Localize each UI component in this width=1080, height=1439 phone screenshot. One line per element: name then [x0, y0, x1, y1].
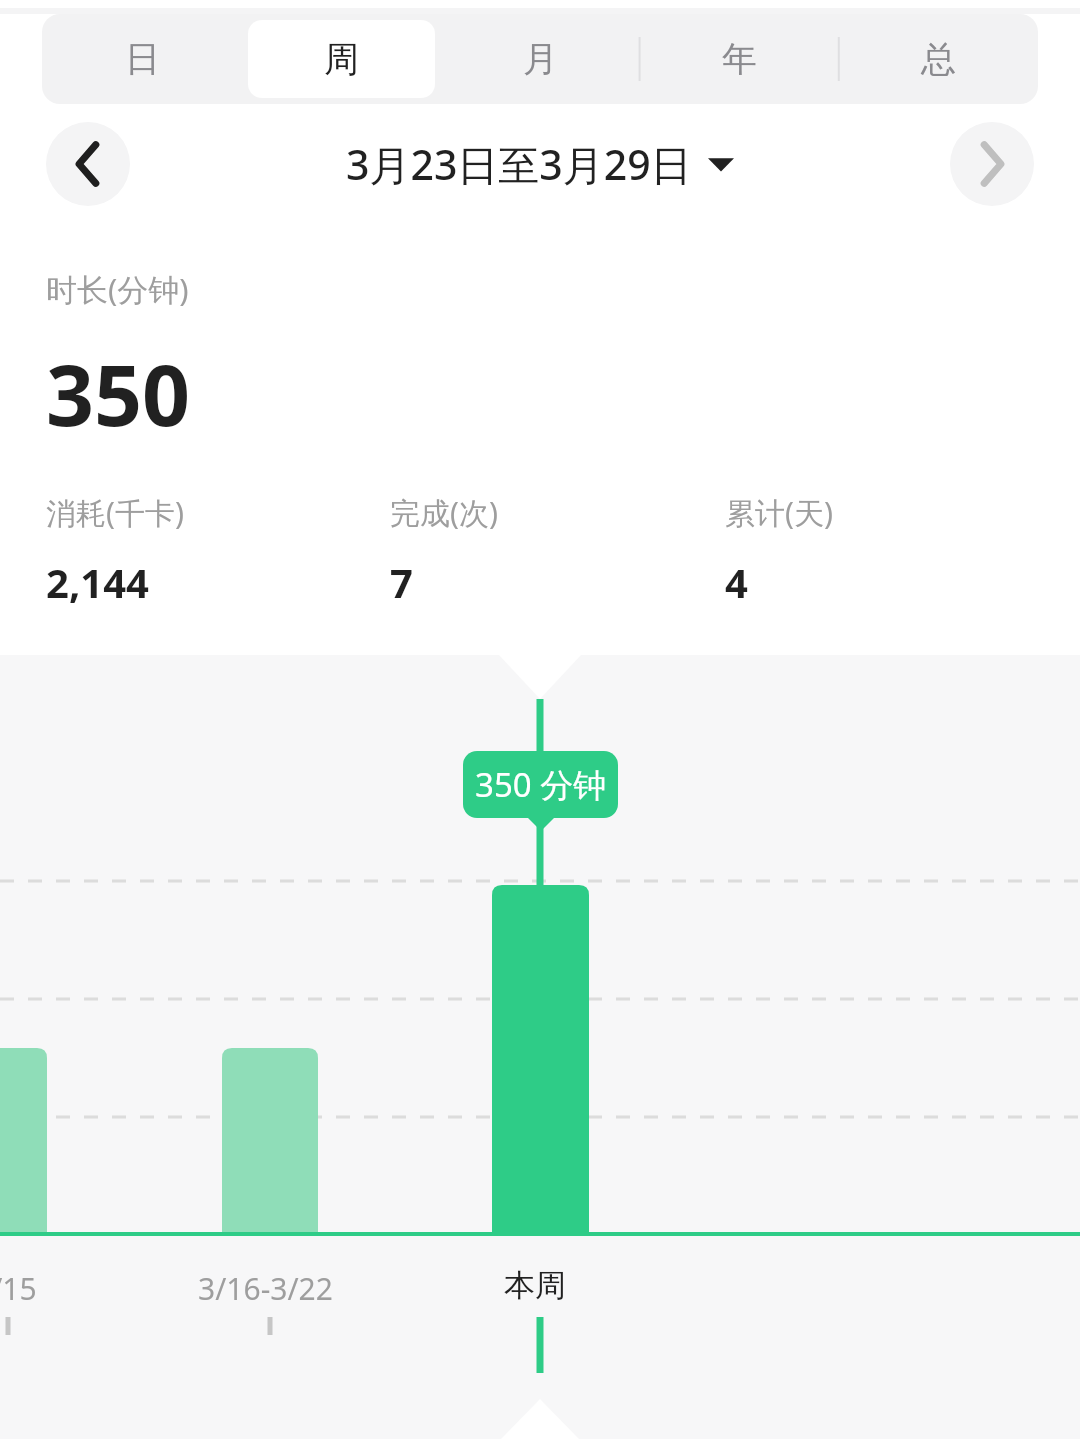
staticText: 累计(天): [725, 492, 833, 533]
button[interactable]: 350 分钟: [463, 751, 618, 818]
staticText: 350: [46, 336, 191, 450]
staticText: 完成(次): [390, 492, 498, 533]
button[interactable]: 月: [447, 20, 634, 98]
staticText: 年: [722, 37, 757, 81]
staticText: 4: [725, 555, 748, 609]
button[interactable]: 周: [248, 20, 435, 98]
staticText: 本周: [504, 1266, 566, 1305]
staticText: 3/16-3/22: [198, 1268, 333, 1309]
staticText: 总: [921, 37, 956, 81]
staticText: 月: [523, 37, 558, 81]
staticText: 3/15: [0, 1268, 37, 1309]
staticText: 周: [324, 37, 359, 81]
button[interactable]: 下一周: [950, 122, 1034, 206]
staticText: 7: [390, 555, 413, 609]
button[interactable]: 年: [646, 20, 833, 98]
staticText: 350 分钟: [475, 762, 607, 807]
staticText: 消耗(千卡): [46, 492, 184, 533]
button[interactable]: 累计(天): [725, 492, 1060, 609]
button[interactable]: 3月23日至3月29日: [338, 130, 742, 198]
button[interactable]: 完成(次): [390, 492, 725, 609]
staticText: 2,144: [46, 555, 149, 609]
button[interactable]: 总: [845, 20, 1032, 98]
staticText: 3月23日至3月29日: [346, 136, 692, 192]
staticText: 日: [125, 37, 160, 81]
button[interactable]: 上一周: [46, 122, 130, 206]
button[interactable]: 日: [48, 20, 236, 98]
button[interactable]: 消耗(千卡): [46, 492, 382, 609]
staticText: 时长(分钟): [46, 268, 189, 310]
